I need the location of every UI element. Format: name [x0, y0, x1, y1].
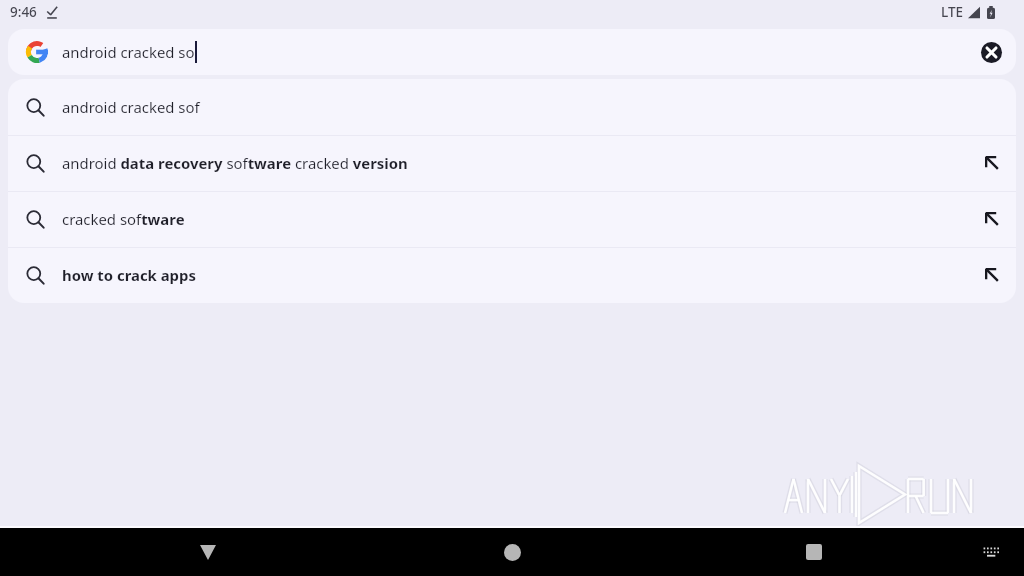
staticText: android cracked sof	[62, 97, 200, 117]
staticText: how to crack apps	[62, 265, 196, 285]
staticText: LTE	[941, 3, 964, 21]
button[interactable]: cracked software	[8, 191, 1016, 247]
button[interactable]: Switch keyboard	[967, 528, 1015, 576]
staticText: android cracked so	[62, 42, 195, 62]
button[interactable]: Recent apps	[790, 528, 838, 576]
button[interactable]: android cracked so	[8, 29, 1016, 75]
staticText: 9:46	[10, 3, 37, 21]
button[interactable]: android data recovery software cracked v…	[8, 135, 1016, 191]
button[interactable]: Home	[488, 528, 536, 576]
button[interactable]: how to crack apps	[8, 247, 1016, 303]
button[interactable]: Insert suggestion	[968, 247, 1016, 303]
staticText: cracked software	[62, 209, 185, 229]
button[interactable]: Clear	[976, 37, 1006, 67]
staticText: android data recovery software cracked v…	[62, 153, 408, 173]
button[interactable]: Back	[184, 528, 232, 576]
button[interactable]: Insert suggestion	[968, 191, 1016, 247]
button[interactable]: Insert suggestion	[968, 135, 1016, 191]
button[interactable]: android cracked sof	[8, 79, 1016, 135]
